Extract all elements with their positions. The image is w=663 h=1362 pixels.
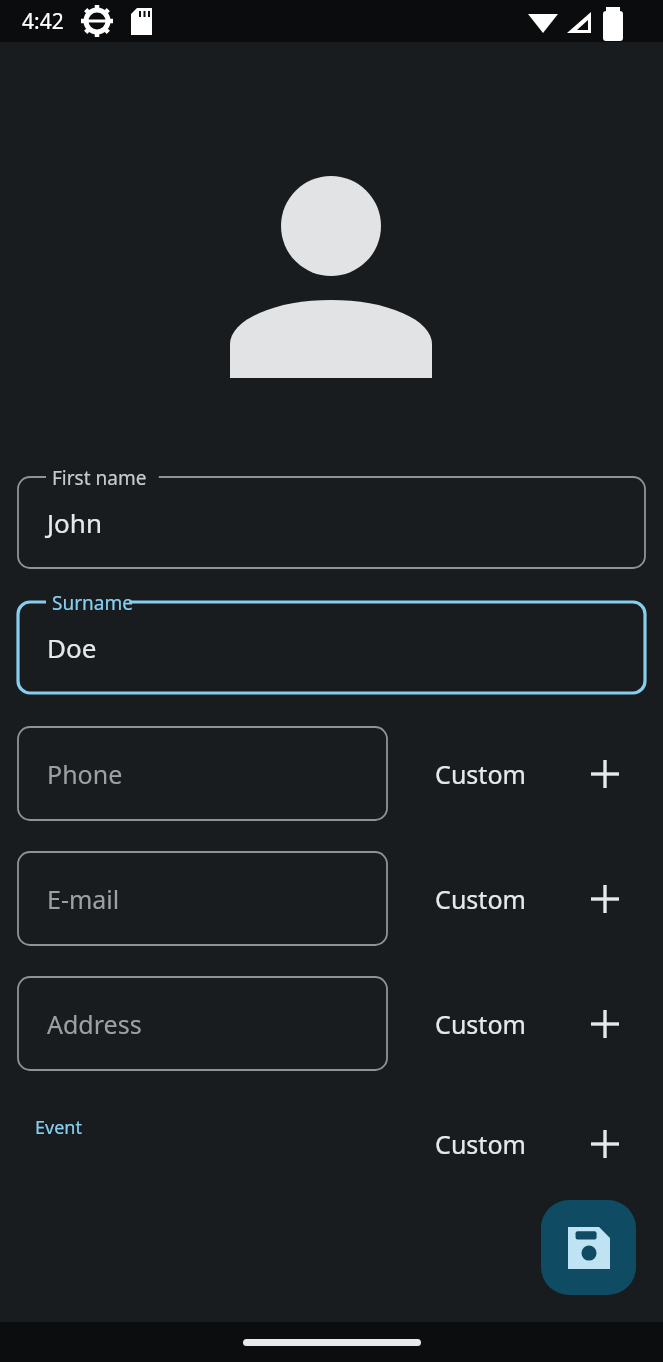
- staticText: Custom: [435, 757, 526, 791]
- staticText: Custom: [435, 882, 526, 916]
- button[interactable]: [18, 477, 645, 568]
- button[interactable]: E-mail: [18, 852, 387, 945]
- staticText: Event: [35, 1115, 82, 1140]
- button[interactable]: Add: [578, 872, 632, 926]
- staticText: John: [47, 505, 102, 540]
- button[interactable]: Add: [578, 747, 632, 801]
- staticText: Doe: [47, 630, 97, 665]
- button[interactable]: Address: [18, 977, 387, 1070]
- staticText: Address: [47, 1007, 142, 1041]
- button[interactable]: Custom: [410, 873, 550, 925]
- button[interactable]: Custom: [410, 1118, 550, 1170]
- staticText: 4:42: [22, 7, 64, 36]
- button[interactable]: [18, 602, 645, 693]
- button[interactable]: Save: [541, 1200, 636, 1295]
- staticText: E-mail: [47, 882, 120, 916]
- button[interactable]: Add: [578, 1117, 632, 1171]
- button[interactable]: Add: [578, 997, 632, 1051]
- staticText: First name: [52, 465, 147, 491]
- staticText: Custom: [435, 1127, 526, 1161]
- staticText: Phone: [47, 757, 123, 791]
- button[interactable]: Event: [18, 1106, 138, 1148]
- button[interactable]: Custom: [410, 998, 550, 1050]
- button[interactable]: Phone: [18, 727, 387, 820]
- staticText: Custom: [435, 1007, 526, 1041]
- button[interactable]: Custom: [410, 748, 550, 800]
- staticText: Surname: [52, 590, 133, 616]
